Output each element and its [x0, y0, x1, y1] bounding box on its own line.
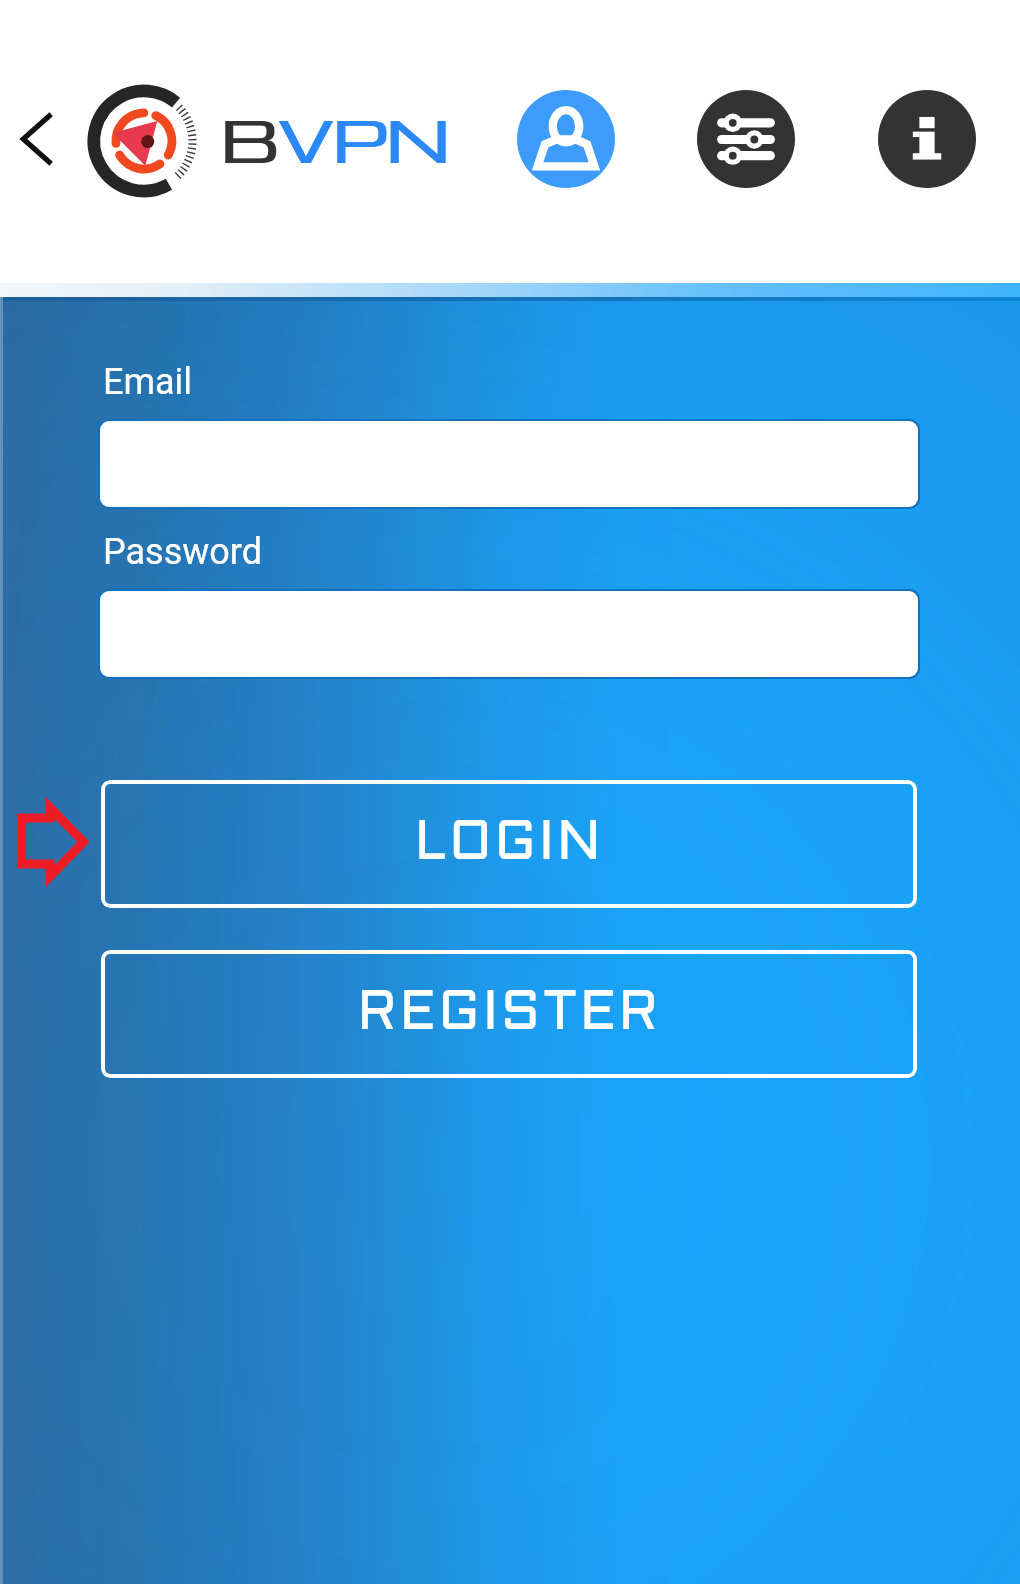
button[interactable]: LOGIN [101, 780, 917, 908]
button[interactable]: Back [0, 93, 86, 185]
button[interactable]: Password field [100, 591, 918, 677]
staticText: VPN [280, 99, 451, 177]
staticText: B [221, 99, 278, 177]
staticText: Password [103, 531, 263, 573]
staticText: B [223, 99, 280, 177]
button[interactable]: BVPN home [90, 86, 200, 196]
staticText: VPN [278, 99, 449, 177]
button[interactable]: REGISTER [101, 950, 917, 1078]
staticText: B [220, 99, 277, 177]
button[interactable]: Settings [697, 90, 795, 188]
staticText: Email [103, 361, 193, 403]
staticText: LOGIN [414, 819, 604, 870]
staticText: REGISTER [357, 989, 661, 1040]
button[interactable]: Info [878, 90, 976, 188]
button[interactable]: Email field [100, 421, 918, 507]
button[interactable]: Account [517, 90, 615, 188]
staticText: VPN [277, 99, 448, 177]
